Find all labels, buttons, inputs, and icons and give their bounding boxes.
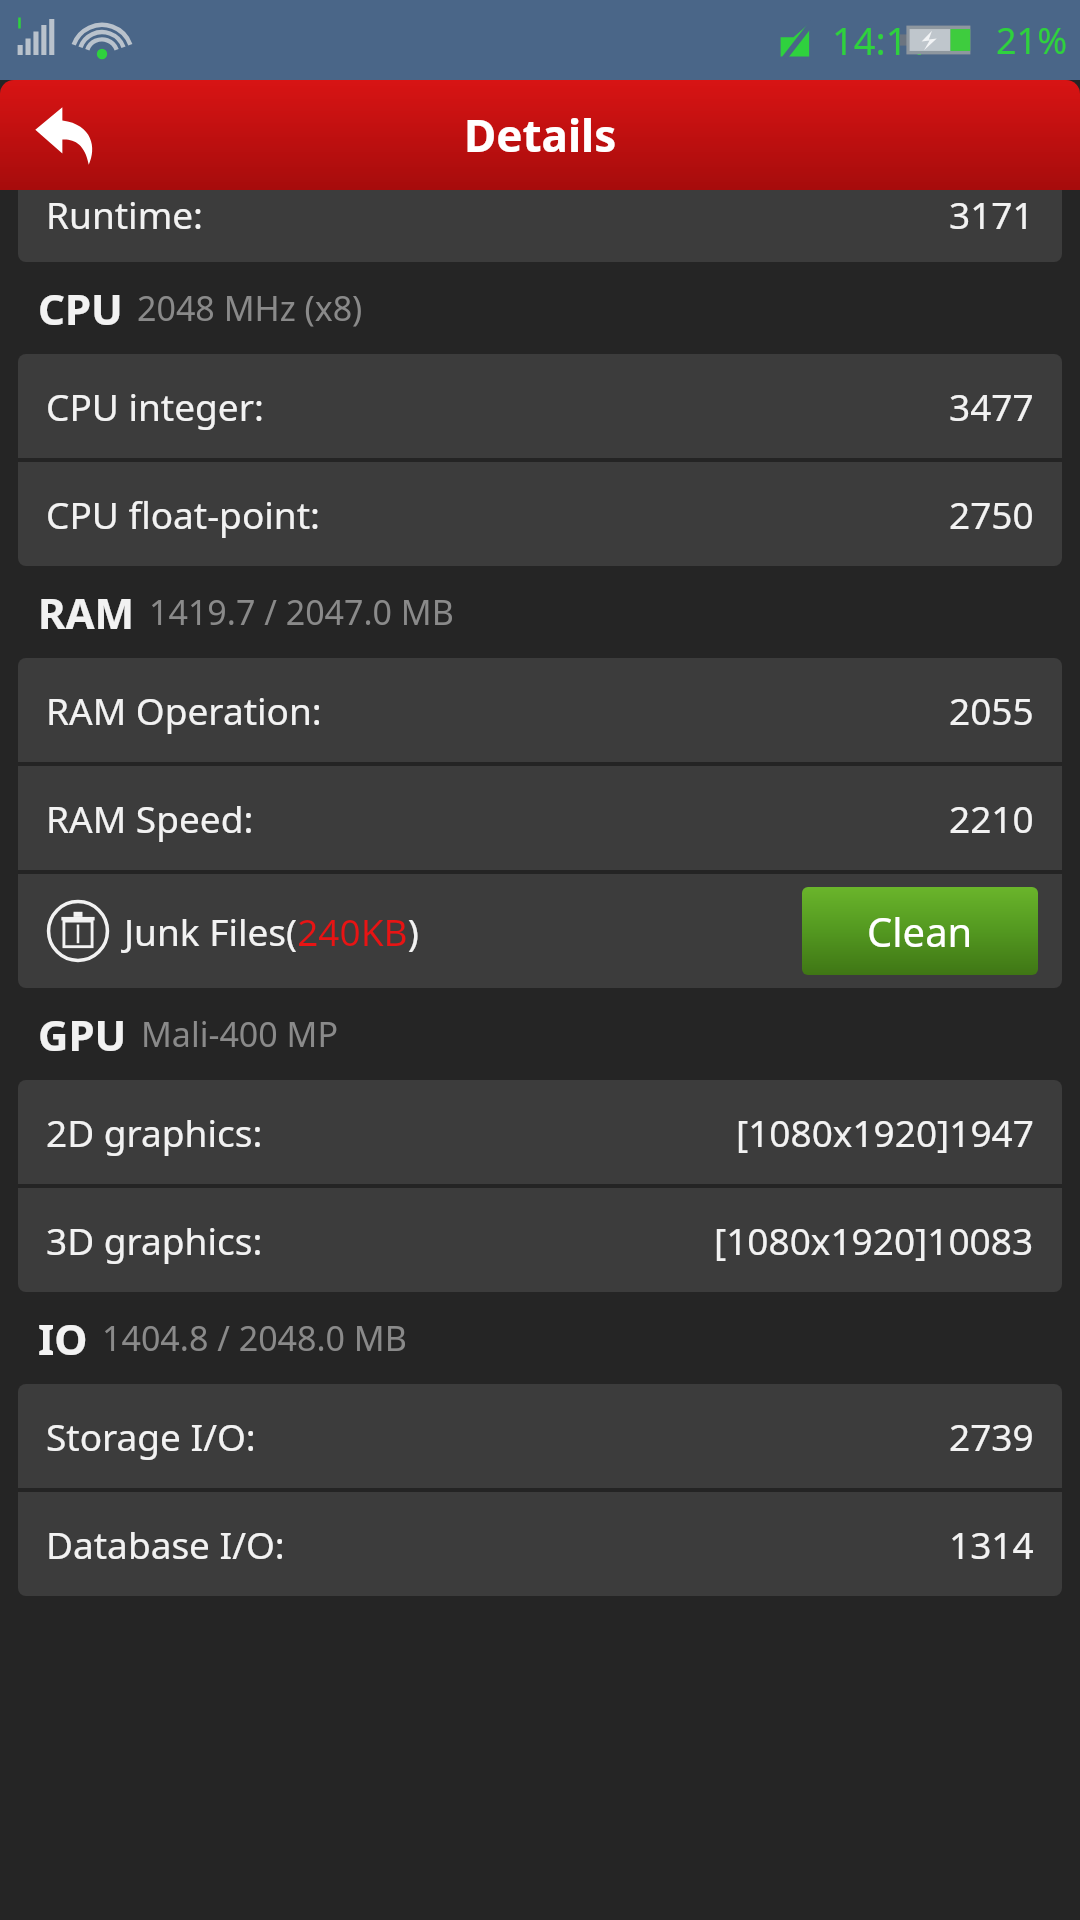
staticText: Junk Files(240KB) bbox=[124, 906, 419, 956]
button[interactable]: CPU float-point: bbox=[18, 462, 1062, 566]
staticText: 3477 bbox=[949, 381, 1034, 431]
staticText: 2D graphics: bbox=[46, 1107, 263, 1157]
button[interactable]: Database I/O: bbox=[18, 1492, 1062, 1596]
staticText: 2048 MHz (x8) bbox=[137, 285, 363, 331]
staticText: RAM Speed: bbox=[46, 793, 254, 843]
staticText: Database I/O: bbox=[46, 1519, 285, 1569]
staticText: 3171 bbox=[949, 190, 1034, 239]
staticText: Mali-400 MP bbox=[141, 1011, 338, 1057]
staticText: CPU float-point: bbox=[46, 489, 320, 539]
staticText: CPU bbox=[38, 280, 123, 337]
staticText: 1419.7 / 2047.0 MB bbox=[149, 589, 454, 635]
staticText: RAM Operation: bbox=[46, 685, 322, 735]
staticText: GPU bbox=[38, 1006, 127, 1063]
staticText: [1080x1920]10083 bbox=[714, 1215, 1034, 1265]
button[interactable]: Storage I/O: bbox=[18, 1384, 1062, 1488]
staticText: 14:11 bbox=[832, 14, 930, 66]
staticText: 2210 bbox=[949, 793, 1034, 843]
staticText: Storage I/O: bbox=[46, 1411, 256, 1461]
staticText: 1404.8 / 2048.0 MB bbox=[102, 1315, 407, 1361]
staticText: 1314 bbox=[949, 1519, 1034, 1569]
button[interactable]: 3D graphics: bbox=[18, 1188, 1062, 1292]
staticText: CPU integer: bbox=[46, 381, 264, 431]
button[interactable]: 2D graphics: bbox=[18, 1080, 1062, 1184]
button[interactable]: Clean bbox=[802, 887, 1038, 975]
button[interactable]: RAM Speed: bbox=[18, 766, 1062, 870]
button[interactable]: RAM Operation: bbox=[18, 658, 1062, 762]
button[interactable]: Runtime: bbox=[18, 190, 1062, 262]
staticText: 21% bbox=[996, 16, 1068, 65]
staticText: RAM bbox=[38, 584, 135, 641]
button[interactable]: Back bbox=[22, 92, 108, 178]
staticText: IO bbox=[38, 1310, 88, 1367]
button[interactable]: CPU integer: bbox=[18, 354, 1062, 458]
staticText: 2055 bbox=[949, 685, 1034, 735]
staticText: Runtime: bbox=[46, 190, 204, 239]
staticText: 3D graphics: bbox=[46, 1215, 263, 1265]
staticText: Details bbox=[464, 105, 617, 165]
staticText: Clean bbox=[867, 904, 973, 958]
staticText: [1080x1920]1947 bbox=[736, 1107, 1034, 1157]
staticText: 2739 bbox=[949, 1411, 1034, 1461]
staticText: 2750 bbox=[949, 489, 1034, 539]
